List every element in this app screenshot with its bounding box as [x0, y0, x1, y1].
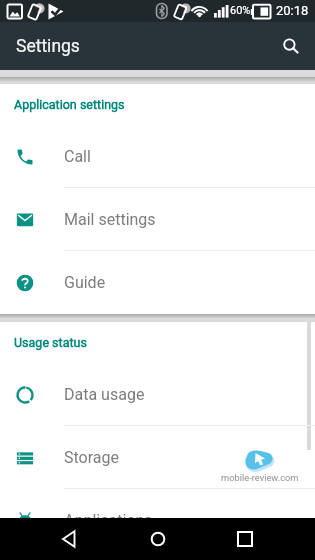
staticText: Storage [64, 448, 119, 467]
staticText: 20:18 [276, 3, 309, 18]
button[interactable]: Home [140, 521, 176, 557]
staticText: Usage status [14, 335, 87, 350]
staticText: Mail settings [64, 210, 156, 229]
button[interactable]: Applications [0, 489, 315, 552]
staticText: Application settings [14, 97, 125, 112]
button[interactable]: Call [0, 125, 315, 188]
staticText: Data usage [64, 385, 145, 404]
staticText: Settings [16, 36, 80, 57]
button[interactable]: Mail settings [0, 188, 315, 251]
button[interactable]: Guide [0, 251, 315, 314]
staticText: mobile-review.com [221, 472, 299, 483]
button[interactable]: Back [52, 521, 88, 557]
button[interactable]: Storage [0, 426, 315, 489]
button[interactable]: Search [269, 24, 313, 68]
staticText: 60% [230, 4, 251, 17]
button[interactable]: Data usage [0, 363, 315, 426]
button[interactable]: Recents [227, 521, 263, 557]
staticText: Applications [64, 511, 153, 530]
staticText: Guide [64, 273, 106, 292]
staticText: Call [64, 147, 91, 166]
